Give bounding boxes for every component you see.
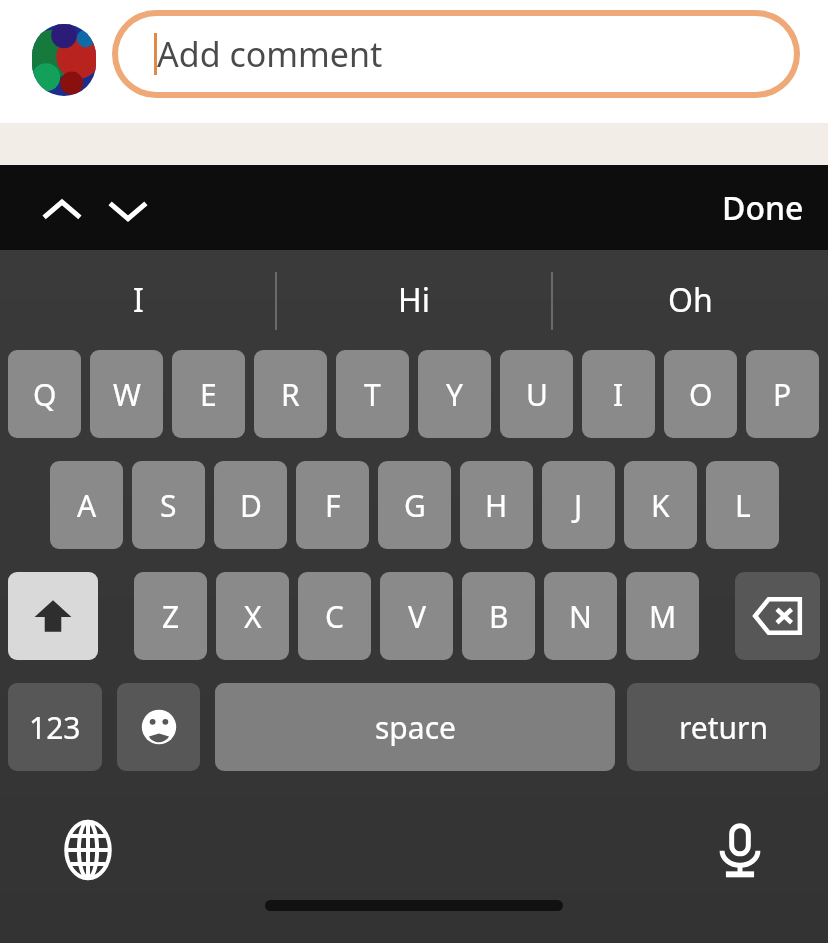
button[interactable]: H [460,461,533,549]
staticText: I [133,278,144,322]
button[interactable]: T [336,350,409,438]
button[interactable]: K [624,461,697,549]
staticText: Done [722,186,804,230]
button[interactable]: Next field [96,179,160,243]
staticText: Oh [668,278,713,322]
staticText: J [574,485,583,526]
button[interactable]: P [746,350,819,438]
button[interactable]: Q [8,350,81,438]
staticText: U [526,374,548,415]
staticText: P [773,374,792,415]
staticText: K [651,485,670,526]
staticText: V [408,596,426,637]
button[interactable]: I [0,250,276,350]
button[interactable]: R [254,350,327,438]
staticText: 123 [29,707,81,748]
button[interactable]: Done [722,186,804,230]
button[interactable]: space [215,683,615,771]
button[interactable]: M [626,572,699,660]
button[interactable]: L [706,461,779,549]
button[interactable]: D [214,461,287,549]
staticText: Hi [398,278,430,322]
button[interactable]: Previous field [30,179,94,243]
button[interactable]: V [380,572,453,660]
staticText: G [404,485,426,526]
button[interactable]: Backspace [735,572,820,660]
staticText: C [325,596,344,637]
button[interactable]: Y [418,350,491,438]
staticText: L [735,485,751,526]
button[interactable]: Shift [8,572,98,660]
staticText: W [113,374,141,415]
button[interactable]: Change keyboard [56,818,120,882]
button[interactable]: Oh [552,250,828,350]
staticText: R [281,374,300,415]
button[interactable]: O [664,350,737,438]
staticText: space [375,707,456,748]
button[interactable]: Z [134,572,207,660]
staticText: Z [162,596,180,637]
button[interactable]: I [582,350,655,438]
button[interactable]: A [50,461,123,549]
button[interactable]: Profile picture [32,24,96,96]
staticText: return [679,707,769,748]
staticText: N [569,596,592,637]
button[interactable]: return [627,683,820,771]
staticText: H [485,485,508,526]
staticText: E [200,374,217,415]
staticText: B [489,596,509,637]
staticText: D [240,485,262,526]
button[interactable]: S [132,461,205,549]
button[interactable]: U [500,350,573,438]
button[interactable]: J [542,461,615,549]
button[interactable]: Voice input [708,818,772,882]
staticText: S [160,485,177,526]
button[interactable]: Emoji [117,683,200,771]
button[interactable]: N [544,572,617,660]
staticText: O [689,374,713,415]
staticText: Q [33,374,57,415]
button[interactable]: Add comment [118,16,794,92]
button[interactable]: E [172,350,245,438]
staticText: T [364,374,381,415]
staticText: M [649,596,677,637]
staticText: X [244,596,262,637]
button[interactable]: 123 [8,683,102,771]
button[interactable]: G [378,461,451,549]
staticText: Add comment [157,31,383,77]
button[interactable]: C [298,572,371,660]
button[interactable]: X [216,572,289,660]
button[interactable]: F [296,461,369,549]
staticText: I [613,374,624,415]
button[interactable]: B [462,572,535,660]
staticText: F [325,485,341,526]
staticText: Y [446,374,463,415]
staticText: A [77,485,97,526]
button[interactable]: W [90,350,163,438]
button[interactable]: Hi [276,250,552,350]
